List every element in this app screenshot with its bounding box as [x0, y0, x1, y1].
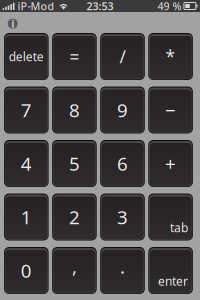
- staticText: 0: [21, 258, 32, 283]
- button[interactable]: ,: [52, 247, 97, 294]
- staticText: .: [120, 254, 125, 279]
- staticText: 1: [21, 205, 32, 229]
- button[interactable]: *: [148, 33, 193, 80]
- staticText: *: [166, 45, 176, 68]
- button[interactable]: 9: [100, 86, 145, 133]
- staticText: ,: [72, 254, 77, 279]
- button[interactable]: 1: [4, 193, 49, 240]
- button[interactable]: tab: [148, 193, 193, 240]
- button[interactable]: =: [52, 33, 97, 80]
- button[interactable]: 8: [52, 86, 97, 133]
- staticText: iP-Mod: [14, 0, 54, 13]
- staticText: 4: [21, 151, 32, 176]
- button[interactable]: /: [100, 33, 145, 80]
- button[interactable]: Info: [8, 19, 18, 29]
- button[interactable]: +: [148, 140, 193, 187]
- button[interactable]: 0: [4, 247, 49, 294]
- staticText: =: [69, 45, 79, 68]
- staticText: 6: [117, 151, 128, 176]
- staticText: enter: [158, 273, 188, 289]
- staticText: delete: [9, 48, 44, 64]
- staticText: −: [165, 98, 176, 122]
- staticText: 49 %: [157, 0, 181, 13]
- staticText: 8: [69, 98, 80, 122]
- button[interactable]: .: [100, 247, 145, 294]
- button[interactable]: enter: [148, 247, 193, 294]
- button[interactable]: 5: [52, 140, 97, 187]
- staticText: tab: [170, 220, 188, 235]
- staticText: 9: [117, 98, 128, 122]
- staticText: /: [119, 45, 125, 68]
- staticText: 3: [117, 205, 128, 229]
- staticText: 23:53: [86, 0, 113, 13]
- button[interactable]: 4: [4, 140, 49, 187]
- staticText: 7: [21, 98, 32, 122]
- button[interactable]: 2: [52, 193, 97, 240]
- button[interactable]: delete: [4, 33, 49, 80]
- staticText: i: [11, 17, 14, 31]
- button[interactable]: 3: [100, 193, 145, 240]
- button[interactable]: −: [148, 86, 193, 133]
- staticText: 2: [69, 205, 80, 229]
- staticText: 5: [69, 151, 80, 176]
- staticText: +: [165, 151, 176, 176]
- button[interactable]: 6: [100, 140, 145, 187]
- button[interactable]: 7: [4, 86, 49, 133]
